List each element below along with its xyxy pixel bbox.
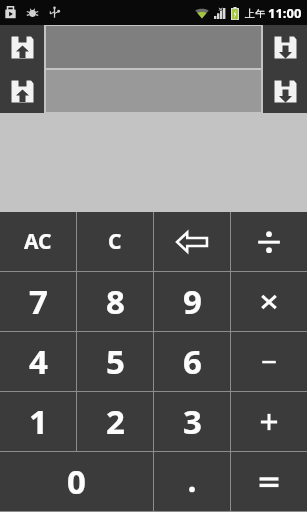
staticText: 上午 (245, 7, 265, 20)
button[interactable]: 4 (0, 332, 76, 391)
staticText: 6 (183, 339, 202, 384)
button[interactable]: C (77, 212, 153, 271)
button[interactable]: 0 (0, 452, 153, 511)
staticText: AC (24, 227, 52, 256)
button[interactable]: Backspace (154, 212, 230, 271)
button[interactable]: 7 (0, 272, 76, 331)
staticText: 1 (29, 399, 48, 444)
button[interactable]: 6 (154, 332, 230, 391)
staticText: 8 (106, 279, 125, 324)
button[interactable]: Multiply (231, 272, 307, 331)
button[interactable]: AC (0, 212, 76, 271)
staticText: 3 (183, 399, 202, 444)
staticText: 11:00 (268, 4, 302, 22)
button[interactable]: 9 (154, 272, 230, 331)
button[interactable]: Equals (231, 452, 307, 511)
button[interactable]: Recall memory 1 (263, 25, 307, 69)
staticText: 7 (29, 279, 48, 324)
staticText: 0 (67, 459, 86, 504)
staticText: 9 (183, 279, 202, 324)
staticText: C (108, 227, 122, 256)
button[interactable]: Minus (231, 332, 307, 391)
button[interactable]: Recall memory 2 (263, 69, 307, 113)
button[interactable]: 3 (154, 392, 230, 451)
button[interactable]: Store to memory 2 (0, 69, 44, 113)
button[interactable]: 8 (77, 272, 153, 331)
staticText: 5 (106, 339, 125, 384)
button[interactable]: 1 (0, 392, 76, 451)
staticText: 2 (106, 399, 125, 444)
button[interactable]: Store to memory 1 (0, 25, 44, 69)
button[interactable]: Plus (231, 392, 307, 451)
button[interactable]: Decimal point (154, 452, 230, 511)
button[interactable]: 2 (77, 392, 153, 451)
button[interactable]: Divide (231, 212, 307, 271)
staticText: 4 (29, 339, 48, 384)
button[interactable]: 5 (77, 332, 153, 391)
